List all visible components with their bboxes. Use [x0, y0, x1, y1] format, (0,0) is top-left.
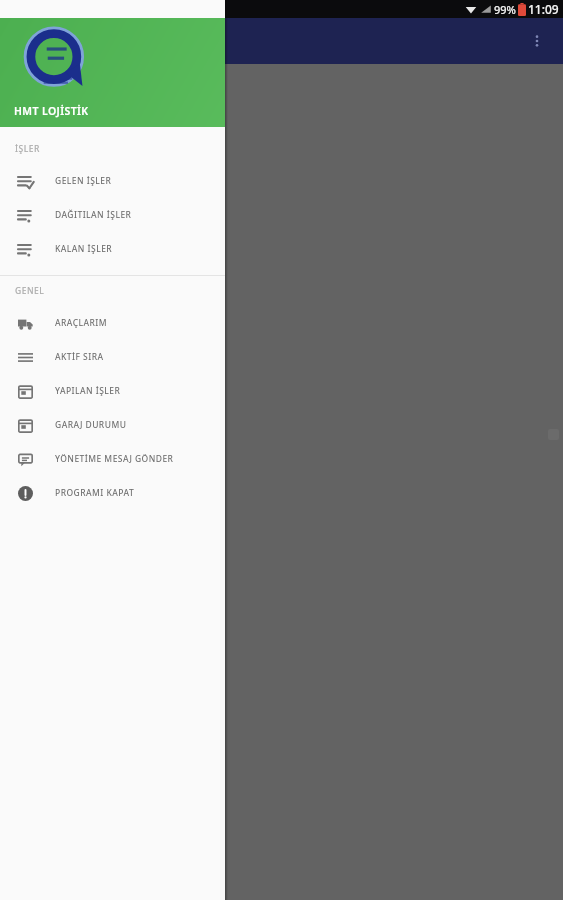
button[interactable]: KALAN İŞLER — [0, 232, 225, 266]
button[interactable]: More options — [521, 25, 553, 57]
staticText: YÖNETİME MESAJ GÖNDER — [55, 453, 174, 465]
staticText: YAPILAN İŞLER — [55, 385, 121, 397]
button[interactable]: GELEN İŞLER — [0, 164, 225, 198]
button[interactable]: YAPILAN İŞLER — [0, 374, 225, 408]
staticText: 11:09 — [528, 1, 559, 17]
staticText: ARAÇLARIM — [55, 317, 108, 329]
staticText: DAĞITILAN İŞLER — [55, 209, 132, 221]
staticText: 99% — [494, 2, 516, 17]
staticText: GENEL — [15, 285, 45, 297]
button[interactable]: DAĞITILAN İŞLER — [0, 198, 225, 232]
staticText: HMT LOJİSTİK — [14, 104, 89, 118]
button[interactable]: PROGRAMI KAPAT — [0, 476, 225, 510]
staticText: İŞLER — [15, 143, 40, 155]
staticText: PROGRAMI KAPAT — [55, 487, 135, 499]
button[interactable]: YÖNETİME MESAJ GÖNDER — [0, 442, 225, 476]
button[interactable]: AKTİF SIRA — [0, 340, 225, 374]
button[interactable]: ARAÇLARIM — [0, 306, 225, 340]
staticText: GARAJ DURUMU — [55, 419, 127, 431]
staticText: AKTİF SIRA — [55, 351, 104, 363]
staticText: KALAN İŞLER — [55, 243, 113, 255]
staticText: GELEN İŞLER — [55, 175, 112, 187]
button[interactable]: GARAJ DURUMU — [0, 408, 225, 442]
